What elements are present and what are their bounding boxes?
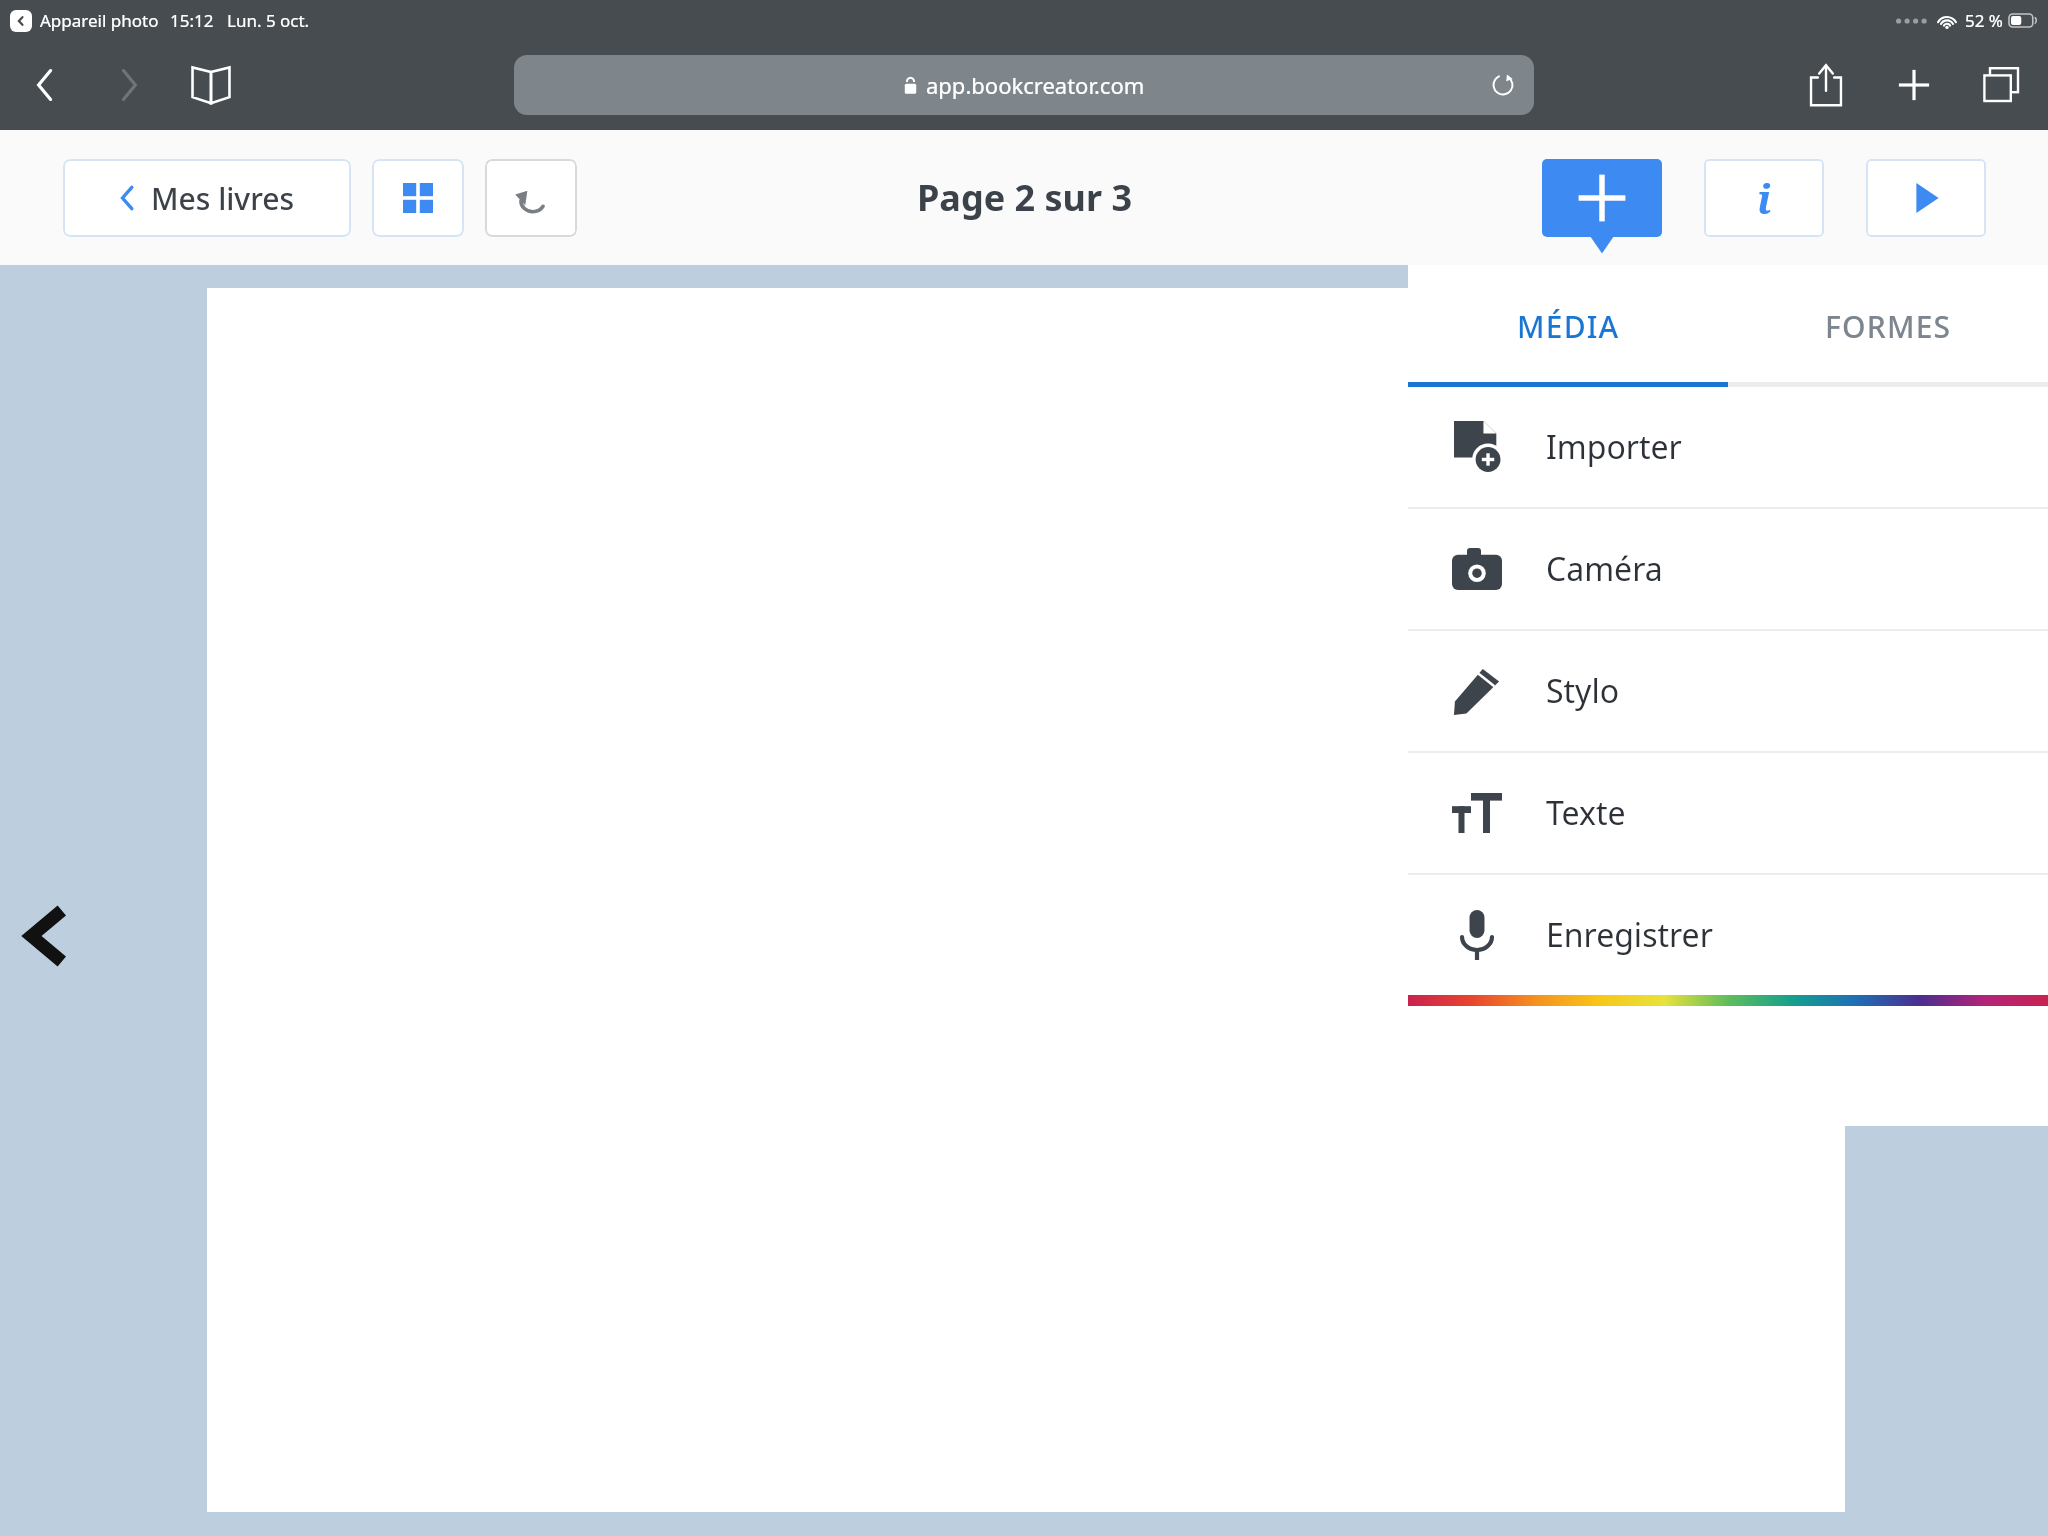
staticText: 15:12 xyxy=(170,9,214,32)
staticText: MÉDIA xyxy=(1517,306,1620,347)
staticText: Caméra xyxy=(1546,547,1663,591)
staticText: Appareil photo xyxy=(40,9,159,32)
button[interactable]: Forward xyxy=(106,62,152,108)
button[interactable]: FORMES xyxy=(1728,265,2048,387)
button[interactable]: Back xyxy=(22,62,68,108)
button[interactable]: Enregistrer xyxy=(1408,875,2048,995)
button[interactable]: MÉDIA xyxy=(1408,265,1728,387)
button[interactable]: Tabs xyxy=(1978,61,2026,109)
staticText: Texte xyxy=(1546,791,1626,835)
staticText: Lun. 5 oct. xyxy=(227,9,310,32)
staticText: Mes livres xyxy=(151,178,295,219)
button[interactable]: New tab xyxy=(1890,61,1938,109)
staticText: Enregistrer xyxy=(1546,913,1713,957)
button[interactable]: Texte xyxy=(1408,753,2048,873)
button[interactable]: Undo xyxy=(485,159,577,237)
button[interactable]: Mes livres xyxy=(63,159,351,237)
staticText: app.bookcreator.com xyxy=(926,70,1145,100)
staticText: FORMES xyxy=(1825,306,1952,347)
staticText: Stylo xyxy=(1546,669,1620,713)
staticText: i xyxy=(1757,171,1772,225)
button[interactable]: Information xyxy=(1704,159,1824,237)
button[interactable]: Pages xyxy=(372,159,464,237)
button[interactable]: Play xyxy=(1866,159,1986,237)
staticText: 52 % xyxy=(1965,9,2003,32)
button[interactable]: Stylo xyxy=(1408,631,2048,751)
button[interactable]: Share xyxy=(1802,61,1850,109)
button[interactable]: Bookmarks xyxy=(188,62,234,108)
button[interactable]: Caméra xyxy=(1408,509,2048,629)
button[interactable]: Importer xyxy=(1408,387,2048,507)
button[interactable]: Reload xyxy=(1486,68,1520,102)
staticText: Importer xyxy=(1546,425,1682,469)
button[interactable]: Previous page xyxy=(10,901,80,971)
button[interactable]: app.bookcreator.com xyxy=(514,55,1534,115)
button[interactable]: Add xyxy=(1542,159,1662,237)
staticText: Page 2 sur 3 xyxy=(917,173,1132,222)
